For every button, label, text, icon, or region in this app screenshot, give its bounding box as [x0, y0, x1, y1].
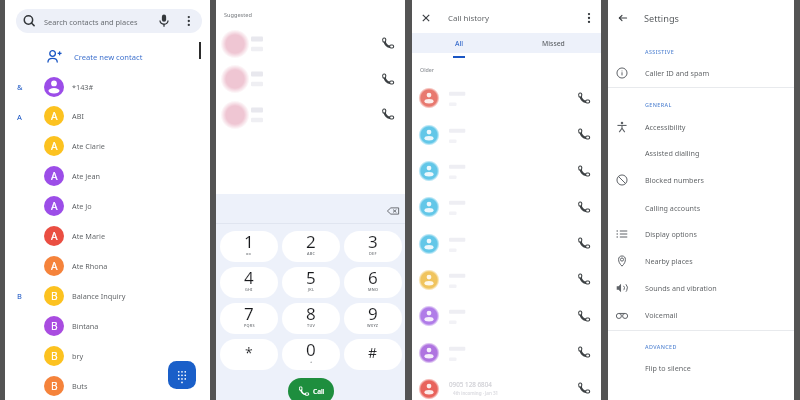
staticText: A: [51, 109, 58, 123]
button[interactable]: [216, 97, 405, 132]
button[interactable]: 5: [282, 267, 340, 298]
staticText: TUV: [307, 323, 316, 328]
staticText: A: [51, 229, 58, 243]
button[interactable]: A: [5, 251, 210, 281]
staticText: ABC: [307, 251, 316, 256]
staticText: 4: [244, 267, 254, 289]
button[interactable]: Blocked numbers: [608, 167, 794, 193]
staticText: 3: [368, 231, 378, 253]
button[interactable]: [412, 262, 601, 298]
button[interactable]: A: [5, 221, 210, 251]
staticText: Voicemail: [645, 310, 678, 320]
button[interactable]: A: [5, 161, 210, 191]
button[interactable]: 6: [344, 267, 402, 298]
staticText: Create new contact: [74, 52, 143, 62]
staticText: 1: [244, 231, 254, 253]
button[interactable]: [412, 117, 601, 153]
button[interactable]: B: [5, 341, 210, 371]
staticText: MNO: [368, 287, 379, 292]
staticText: Display options: [645, 229, 697, 239]
button[interactable]: Call: [288, 378, 334, 400]
staticText: JKL: [308, 287, 315, 292]
staticText: 6: [368, 267, 378, 289]
staticText: Assisted dialling: [645, 148, 700, 158]
staticText: ASSISTIVE: [645, 48, 675, 55]
button[interactable]: Display options: [608, 221, 794, 247]
button[interactable]: Nearby places: [608, 248, 794, 274]
staticText: oo: [246, 251, 252, 256]
button[interactable]: [412, 371, 601, 400]
staticText: ADVANCED: [645, 343, 677, 350]
staticText: Search contacts and places: [44, 17, 138, 27]
button[interactable]: [412, 298, 601, 334]
staticText: Missed: [542, 39, 565, 48]
button[interactable]: Create new contact: [5, 45, 210, 68]
button[interactable]: 1: [220, 231, 278, 262]
staticText: Sounds and vibration: [645, 283, 717, 293]
button[interactable]: 8: [282, 303, 340, 334]
staticText: Blocked numbers: [645, 175, 704, 185]
staticText: Bintana: [72, 321, 99, 331]
staticText: 4th incoming · Jan 31: [453, 390, 499, 396]
staticText: 5: [306, 267, 316, 289]
button[interactable]: #: [344, 339, 402, 370]
button[interactable]: 4: [220, 267, 278, 298]
button[interactable]: A: [5, 131, 210, 161]
staticText: Older: [420, 66, 434, 73]
staticText: Caller ID and spam: [645, 68, 710, 78]
button[interactable]: B: [5, 311, 210, 341]
button[interactable]: Dialpad: [168, 361, 196, 389]
staticText: B: [17, 291, 22, 301]
button[interactable]: [412, 335, 601, 371]
button[interactable]: *143#: [5, 72, 210, 102]
staticText: Ate Marie: [72, 231, 106, 241]
button[interactable]: Caller ID and spam: [608, 60, 794, 86]
button[interactable]: Accessibility: [608, 114, 794, 140]
staticText: 2: [306, 231, 316, 253]
button[interactable]: [216, 26, 405, 61]
button[interactable]: [412, 80, 601, 116]
button[interactable]: [412, 189, 601, 225]
button[interactable]: [216, 61, 405, 96]
staticText: 9: [368, 303, 378, 325]
staticText: GENERAL: [645, 101, 672, 108]
button[interactable]: 0: [282, 339, 340, 370]
button[interactable]: 9: [344, 303, 402, 334]
button[interactable]: Close: [419, 11, 433, 25]
button[interactable]: B: [5, 281, 210, 311]
staticText: Ate Clarie: [72, 141, 105, 151]
button[interactable]: Backspace: [387, 205, 399, 217]
button[interactable]: 3: [344, 231, 402, 262]
staticText: Buts: [72, 381, 88, 391]
button[interactable]: More options: [582, 11, 596, 25]
button[interactable]: [412, 153, 601, 189]
button[interactable]: Assisted dialling: [608, 140, 794, 166]
staticText: 7: [244, 303, 254, 325]
staticText: A: [17, 112, 22, 122]
staticText: Settings: [644, 12, 679, 25]
button[interactable]: 7: [220, 303, 278, 334]
staticText: #: [368, 343, 378, 362]
button[interactable]: A: [5, 101, 210, 131]
button[interactable]: Flip to silence: [608, 355, 794, 381]
staticText: WXYZ: [367, 323, 379, 328]
button[interactable]: A: [5, 191, 210, 221]
button[interactable]: 2: [282, 231, 340, 262]
button[interactable]: Back: [616, 11, 630, 25]
staticText: B: [51, 379, 58, 393]
button[interactable]: All: [412, 33, 506, 53]
button[interactable]: Sounds and vibration: [608, 275, 794, 301]
staticText: Balance Inquiry: [72, 291, 126, 301]
staticText: DEF: [369, 251, 377, 256]
staticText: ABI: [72, 111, 84, 121]
staticText: Flip to silence: [645, 363, 691, 373]
button[interactable]: Voicemail: [608, 302, 794, 328]
button[interactable]: B: [5, 371, 210, 400]
button[interactable]: *: [220, 339, 278, 370]
button[interactable]: Search contacts and places: [16, 9, 202, 33]
button[interactable]: [412, 226, 601, 262]
staticText: Calling accounts: [645, 203, 701, 213]
button[interactable]: Calling accounts: [608, 195, 794, 221]
staticText: A: [51, 169, 58, 183]
button[interactable]: Missed: [506, 33, 601, 53]
